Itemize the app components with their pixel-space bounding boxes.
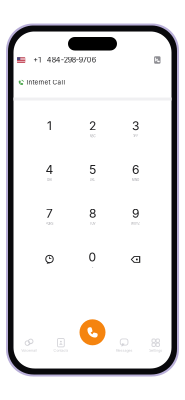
staticText: 484-298-9706: [47, 56, 96, 64]
staticText: Voicemail: [21, 348, 37, 352]
button[interactable]: Internet Call: [13, 67, 171, 97]
staticText: 4: [45, 162, 53, 177]
button[interactable]: 5: [71, 150, 114, 194]
staticText: 5: [89, 162, 96, 177]
staticText: 0: [88, 250, 96, 264]
button[interactable]: 8: [71, 194, 114, 238]
staticText: 3: [132, 119, 139, 133]
staticText: +1: [33, 56, 41, 64]
button[interactable]: 1: [28, 106, 71, 150]
staticText: 6: [132, 162, 139, 177]
staticText: 1: [47, 119, 52, 133]
button[interactable]: 7: [28, 194, 71, 238]
button[interactable]: 9: [114, 194, 157, 238]
staticText: Messages: [116, 348, 133, 352]
staticText: JKL: [89, 178, 95, 182]
staticText: MNO: [132, 178, 139, 182]
staticText: 9: [132, 206, 139, 221]
staticText: 7: [46, 206, 53, 221]
button[interactable]: 0: [71, 238, 114, 281]
staticText: Settings: [149, 348, 162, 352]
staticText: Internet Call: [26, 78, 65, 86]
staticText: DEF: [132, 134, 138, 138]
staticText: 2: [89, 119, 96, 133]
staticText: +: [91, 265, 93, 269]
staticText: Contacts: [53, 348, 68, 352]
staticText: 8: [89, 206, 96, 221]
staticText: WXYZ: [131, 222, 140, 225]
button[interactable]: Settings: [140, 337, 171, 353]
button[interactable]: Voicemail: [13, 337, 45, 353]
button[interactable]: 4: [28, 150, 71, 194]
button[interactable]: Contacts: [45, 337, 77, 353]
button[interactable]: 2: [71, 106, 114, 150]
staticText: GHI: [47, 178, 52, 182]
button[interactable]: 6: [114, 150, 157, 194]
button[interactable]: Contacts: [151, 53, 163, 67]
staticText: TUV: [89, 222, 95, 225]
button[interactable]: Call: [79, 319, 105, 345]
staticText: PQRS: [45, 222, 53, 225]
staticText: ABC: [89, 134, 95, 138]
button[interactable]: Delete: [114, 238, 157, 281]
button[interactable]: Messages: [108, 337, 140, 353]
button[interactable]: Recents: [28, 238, 71, 281]
button[interactable]: 3: [114, 106, 157, 150]
